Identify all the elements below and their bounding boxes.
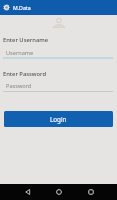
button[interactable]: Recent apps [84,185,98,199]
staticText: Login [50,115,67,124]
button[interactable]: Login [4,111,113,127]
button[interactable]: App logo [3,4,10,11]
staticText: Username [6,49,34,57]
button[interactable]: Home [52,185,66,199]
button[interactable]: Back [21,185,35,199]
button[interactable]: Password [3,80,113,92]
staticText: Password [6,82,32,90]
staticText: M.Data [13,4,31,11]
button[interactable]: Username [3,47,113,59]
staticText: Enter Password [3,70,47,78]
staticText: Enter Username [3,36,49,44]
